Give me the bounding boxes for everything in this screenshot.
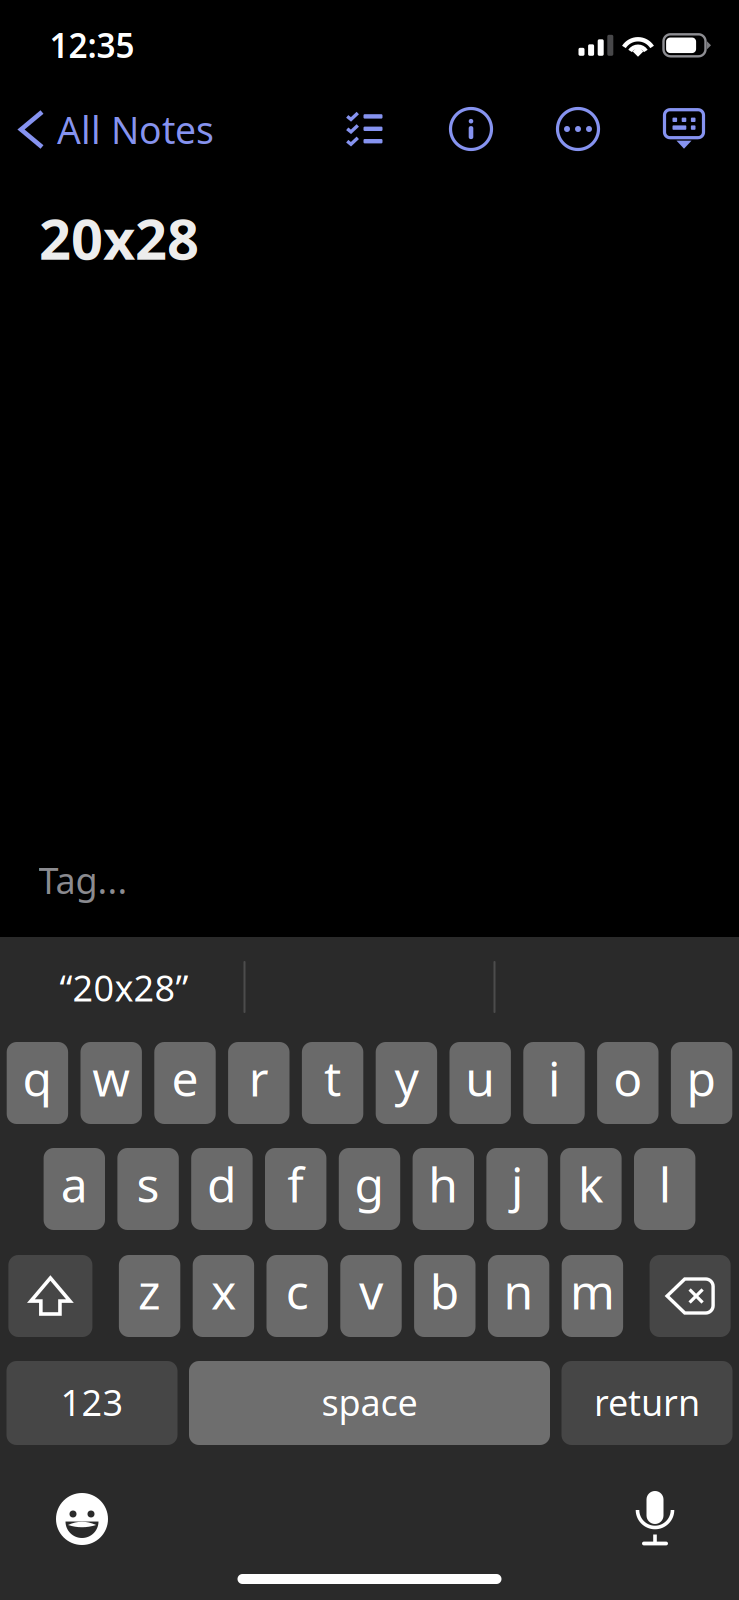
- button[interactable]: Info: [450, 108, 492, 150]
- staticText: b: [430, 1259, 460, 1323]
- button[interactable]: return: [561, 1361, 732, 1445]
- button[interactable]: q: [7, 1042, 68, 1124]
- staticText: i: [548, 1046, 560, 1110]
- button[interactable]: s: [117, 1148, 179, 1230]
- button[interactable]: k: [560, 1148, 622, 1230]
- staticText: 20x28: [39, 201, 199, 275]
- button[interactable]: n: [488, 1255, 549, 1337]
- button[interactable]: Emoji: [56, 1493, 108, 1545]
- staticText: l: [659, 1152, 671, 1216]
- button[interactable]: u: [449, 1042, 511, 1124]
- button[interactable]: i: [523, 1042, 585, 1124]
- button[interactable]: c: [266, 1255, 328, 1337]
- button[interactable]: p: [671, 1042, 732, 1124]
- staticText: space: [321, 1378, 417, 1426]
- button[interactable]: All Notes: [2, 97, 224, 161]
- staticText: t: [324, 1046, 341, 1110]
- button[interactable]: j: [486, 1148, 548, 1230]
- button[interactable]: Delete: [650, 1255, 731, 1337]
- staticText: r: [249, 1046, 269, 1110]
- staticText: q: [22, 1046, 52, 1110]
- staticText: 123: [60, 1378, 123, 1426]
- staticText: Tag...: [38, 856, 127, 904]
- staticText: h: [428, 1152, 458, 1216]
- button[interactable]: 123: [6, 1361, 177, 1445]
- staticText: x: [211, 1259, 236, 1323]
- button[interactable]: t: [302, 1042, 363, 1124]
- staticText: e: [171, 1046, 198, 1110]
- staticText: j: [511, 1152, 523, 1216]
- staticText: f: [287, 1152, 304, 1216]
- staticText: d: [207, 1152, 237, 1216]
- staticText: return: [594, 1378, 700, 1426]
- button[interactable]: w: [80, 1042, 142, 1124]
- button[interactable]: g: [339, 1148, 400, 1230]
- staticText: g: [354, 1152, 384, 1216]
- button[interactable]: e: [154, 1042, 216, 1124]
- staticText: s: [137, 1152, 160, 1216]
- button[interactable]: space: [189, 1361, 550, 1445]
- staticText: 12:35: [49, 23, 134, 67]
- staticText: m: [570, 1259, 615, 1323]
- button[interactable]: l: [634, 1148, 695, 1230]
- button[interactable]: Hide Keyboard: [664, 110, 703, 149]
- staticText: n: [504, 1259, 534, 1323]
- staticText: a: [61, 1152, 88, 1216]
- button[interactable]: y: [376, 1042, 437, 1124]
- staticText: p: [687, 1046, 717, 1110]
- staticText: z: [138, 1259, 161, 1323]
- button[interactable]: h: [413, 1148, 474, 1230]
- staticText: y: [394, 1046, 418, 1110]
- button[interactable]: Dictate: [636, 1491, 674, 1545]
- button[interactable]: Checklist: [346, 113, 382, 145]
- staticText: v: [359, 1259, 383, 1323]
- staticText: o: [613, 1046, 642, 1110]
- staticText: w: [92, 1046, 130, 1110]
- button[interactable]: m: [562, 1255, 623, 1337]
- staticText: All Notes: [57, 105, 214, 154]
- staticText: c: [286, 1259, 309, 1323]
- button[interactable]: b: [414, 1255, 475, 1337]
- button[interactable]: o: [597, 1042, 658, 1124]
- staticText: “20x28”: [59, 964, 188, 1011]
- button[interactable]: f: [265, 1148, 326, 1230]
- button[interactable]: d: [191, 1148, 253, 1230]
- button[interactable]: v: [340, 1255, 402, 1337]
- button[interactable]: z: [119, 1255, 180, 1337]
- button[interactable]: Shift: [8, 1255, 92, 1337]
- staticText: k: [578, 1152, 604, 1216]
- staticText: u: [465, 1046, 495, 1110]
- button[interactable]: r: [228, 1042, 289, 1124]
- button[interactable]: More: [557, 108, 599, 150]
- button[interactable]: a: [44, 1148, 105, 1230]
- button[interactable]: x: [193, 1255, 254, 1337]
